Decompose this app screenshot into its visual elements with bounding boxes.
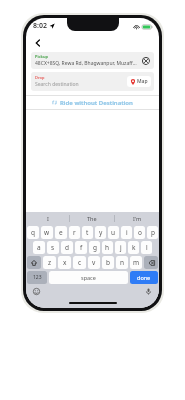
staticText: k (132, 243, 136, 252)
button[interactable]: h (102, 241, 113, 254)
button[interactable]: l (141, 241, 152, 254)
button[interactable]: o (134, 226, 145, 239)
button[interactable]: Ride without Destination (26, 96, 159, 109)
staticText: m (133, 258, 140, 267)
button[interactable]: s (47, 241, 59, 254)
staticText: 8:02 (33, 21, 47, 31)
button[interactable]: Shift (27, 256, 41, 269)
button[interactable]: n (116, 256, 128, 269)
staticText: Pickup (35, 54, 49, 59)
staticText: l (146, 243, 148, 252)
staticText: space (81, 274, 96, 281)
button[interactable]: m (130, 256, 142, 269)
staticText: p (151, 228, 155, 237)
staticText: w (44, 228, 50, 237)
staticText: Ride without Destination (60, 99, 133, 107)
button[interactable]: The (70, 212, 114, 225)
button[interactable]: j (115, 241, 126, 254)
button[interactable]: z (43, 256, 56, 269)
staticText: o (138, 228, 142, 237)
staticText: i (126, 228, 128, 237)
button[interactable]: p (147, 226, 158, 239)
button[interactable]: d (61, 241, 73, 254)
button[interactable]: Drop (31, 72, 154, 91)
button[interactable]: v (88, 256, 100, 269)
staticText: h (105, 243, 110, 252)
staticText: g (93, 243, 97, 252)
staticText: y (99, 228, 103, 237)
staticText: I'm (133, 215, 142, 222)
staticText: n (120, 258, 125, 267)
button[interactable]: a (33, 241, 45, 254)
button[interactable]: space (49, 271, 128, 284)
staticText: Map (137, 78, 148, 85)
button[interactable]: Backspace (144, 256, 158, 269)
staticText: 48CX+8SQ, Rewa Rd, Bhagwanpur, Muzaffarp… (35, 60, 137, 67)
staticText: c (78, 258, 82, 267)
staticText: a (37, 243, 41, 252)
staticText: z (48, 258, 52, 267)
button[interactable]: f (75, 241, 87, 254)
button[interactable]: Clear pickup (141, 56, 150, 65)
button[interactable]: b (102, 256, 114, 269)
staticText: e (59, 228, 63, 237)
button[interactable]: x (58, 256, 71, 269)
staticText: Drop (35, 75, 45, 80)
staticText: done (137, 274, 151, 281)
button[interactable]: I (26, 212, 69, 225)
button[interactable]: y (95, 226, 106, 239)
button[interactable]: c (73, 256, 86, 269)
button[interactable]: Pickup (31, 52, 154, 69)
button[interactable]: I'm (115, 212, 159, 225)
button[interactable]: q (27, 226, 39, 239)
staticText: q (31, 228, 35, 237)
button[interactable]: t (82, 226, 93, 239)
button[interactable]: Map (130, 78, 148, 85)
button[interactable]: r (69, 226, 80, 239)
staticText: The (87, 215, 97, 222)
staticText: Search destination (35, 81, 79, 88)
staticText: u (111, 228, 116, 237)
staticText: r (73, 228, 76, 237)
button[interactable]: g (89, 241, 100, 254)
button[interactable]: 123 (27, 271, 47, 284)
button[interactable]: i (121, 226, 132, 239)
staticText: x (63, 258, 67, 267)
button[interactable]: e (55, 226, 67, 239)
button[interactable]: Back (31, 36, 45, 50)
staticText: I (47, 215, 49, 222)
button[interactable]: done (130, 271, 158, 284)
button[interactable]: Dictate (144, 287, 153, 296)
button[interactable]: u (108, 226, 119, 239)
staticText: v (92, 258, 96, 267)
staticText: s (51, 243, 55, 252)
staticText: d (65, 243, 69, 252)
button[interactable]: Emoji (32, 287, 41, 296)
button[interactable]: k (128, 241, 139, 254)
staticText: f (80, 243, 83, 252)
staticText: j (120, 243, 122, 252)
staticText: 123 (33, 274, 42, 281)
staticText: b (106, 258, 110, 267)
button[interactable]: w (41, 226, 53, 239)
staticText: t (86, 228, 89, 237)
